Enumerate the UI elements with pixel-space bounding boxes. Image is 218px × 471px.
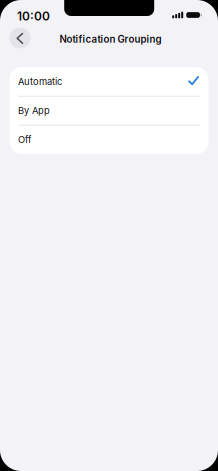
- staticText: By App: [18, 105, 50, 116]
- staticText: Automatic: [18, 76, 62, 87]
- button[interactable]: Automatic: [9, 67, 208, 96]
- button[interactable]: Back: [9, 27, 30, 48]
- staticText: Off: [18, 134, 31, 145]
- staticText: 10:00: [17, 9, 50, 23]
- staticText: Notification Grouping: [59, 33, 161, 45]
- button[interactable]: Off: [9, 125, 208, 154]
- button[interactable]: By App: [9, 96, 208, 125]
